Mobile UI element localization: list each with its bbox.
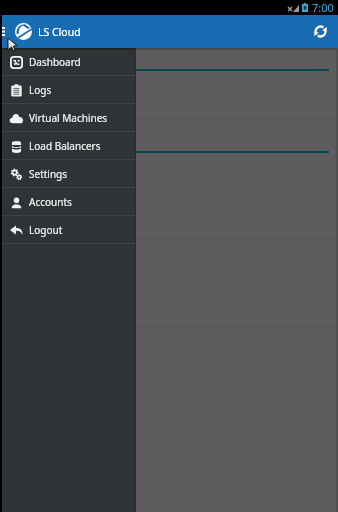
staticText: Load Balancers bbox=[29, 139, 101, 153]
staticText: Settings bbox=[29, 167, 68, 181]
staticText: Virtual Machines bbox=[29, 111, 108, 125]
staticText: 7:00 bbox=[312, 0, 334, 15]
button[interactable]: Refresh bbox=[302, 15, 338, 48]
button[interactable]: Logout bbox=[0, 216, 136, 243]
button[interactable]: Load Balancers bbox=[0, 132, 136, 159]
button[interactable]: Dashboard bbox=[0, 48, 136, 75]
staticText: Accounts bbox=[29, 195, 72, 209]
staticText: Dashboard bbox=[29, 55, 81, 69]
button[interactable]: Settings bbox=[0, 160, 136, 187]
button[interactable]: Accounts bbox=[0, 188, 136, 215]
staticText: Logs bbox=[29, 83, 52, 97]
button[interactable]: Open navigation drawer bbox=[0, 15, 15, 48]
staticText: LS Cloud bbox=[38, 25, 81, 39]
staticText: Logout bbox=[29, 223, 63, 237]
button[interactable]: Logs bbox=[0, 76, 136, 103]
button[interactable]: Virtual Machines bbox=[0, 104, 136, 131]
